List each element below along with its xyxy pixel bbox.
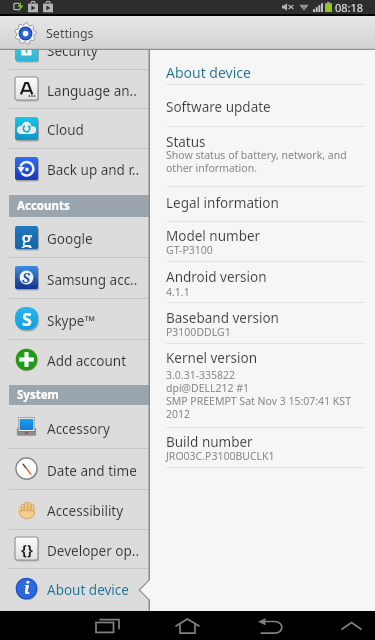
staticText: 3.0.31-335822 dpi@DELL212 #1 SMP PREEMPT… [166, 368, 351, 421]
button[interactable]: Back up and r.. [0, 148, 150, 188]
staticText: S [22, 307, 32, 330]
button[interactable]: Software update [150, 85, 375, 127]
staticText: Build number [166, 433, 253, 451]
staticText: Settings [46, 25, 94, 42]
button[interactable]: Baseband version [150, 303, 375, 344]
button[interactable]: Accessibility [0, 489, 150, 529]
button[interactable]: Date and time [0, 448, 150, 489]
staticText: GT-P3100 [166, 243, 213, 257]
button[interactable]: Add account [0, 339, 150, 379]
staticText: System [17, 387, 59, 403]
staticText: Developer op.. [47, 542, 140, 560]
staticText: Date and time [47, 462, 137, 480]
button[interactable]: S [0, 298, 150, 339]
button[interactable]: Kernel version [150, 344, 375, 428]
staticText: i [24, 577, 30, 599]
staticText: Android version [166, 268, 267, 286]
button[interactable]: Cloud [0, 108, 150, 148]
staticText: Accessory [47, 420, 110, 438]
staticText: Legal information [166, 194, 279, 212]
staticText: 4.1.1 [166, 285, 190, 299]
staticText: Accounts [17, 198, 70, 214]
staticText: 08:18 [335, 0, 364, 14]
staticText: About device [47, 581, 129, 599]
button[interactable]: Build number [150, 428, 375, 468]
staticText: About device [166, 63, 251, 82]
button[interactable]: Back [250, 611, 290, 640]
staticText: Software update [166, 98, 271, 116]
staticText: Model number [166, 227, 261, 245]
staticText: Google [47, 230, 93, 248]
button[interactable]: Security [0, 50, 150, 69]
staticText: Kernel version [166, 349, 258, 367]
button[interactable]: Accessory [0, 405, 150, 448]
staticText: Status [166, 133, 206, 151]
button[interactable]: Recent apps [87, 611, 127, 640]
staticText: Back up and r.. [47, 161, 140, 179]
button[interactable]: Show more [331, 611, 371, 640]
staticText: P3100DDLG1 [166, 325, 231, 339]
staticText: JRO03C.P3100BUCLK1 [166, 449, 275, 463]
staticText: Samsung acc.. [47, 271, 138, 289]
button[interactable]: Language an.. [0, 69, 150, 108]
staticText: g [21, 225, 33, 248]
button[interactable]: i [0, 568, 150, 608]
staticText: Accessibility [47, 502, 124, 520]
button[interactable]: Home [167, 611, 207, 640]
staticText: S [22, 268, 31, 287]
button[interactable]: Model number [150, 222, 375, 262]
staticText: Security [47, 50, 98, 60]
button[interactable]: Status [150, 127, 375, 187]
staticText: Baseband version [166, 309, 279, 327]
staticText: Cloud [47, 121, 84, 139]
staticText: Add account [47, 352, 127, 370]
button[interactable]: Android version [150, 262, 375, 303]
button[interactable]: Legal information [150, 187, 375, 222]
staticText: {} [21, 539, 33, 559]
button[interactable]: S [0, 257, 150, 298]
button[interactable]: g [0, 217, 150, 257]
staticText: Show status of battery, network, and oth… [166, 148, 347, 175]
staticText: Language an.. [47, 82, 137, 100]
staticText: Skype™ [47, 312, 95, 330]
button[interactable]: {} [0, 529, 150, 568]
